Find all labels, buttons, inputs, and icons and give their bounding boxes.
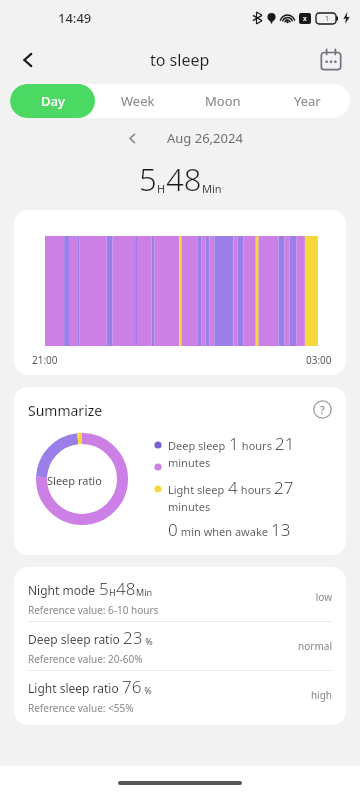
staticText: Light sleep ratio <box>28 680 122 696</box>
staticText: Deep sleep ratio <box>28 631 123 647</box>
button[interactable]: Week <box>95 84 180 118</box>
staticText: minutes <box>168 499 211 514</box>
staticText: Light sleep <box>168 482 228 497</box>
staticText: Day <box>41 92 65 110</box>
staticText: high <box>310 688 332 702</box>
staticText: Reference value: 20-60% <box>28 652 143 666</box>
staticText: 21:00 <box>32 353 58 367</box>
button[interactable]: Previous day <box>117 123 147 153</box>
staticText: 23 <box>123 626 143 649</box>
button[interactable]: Night mode <box>14 573 346 621</box>
staticText: Sleep ratio <box>47 473 102 488</box>
staticText: 03:00 <box>306 353 332 367</box>
button[interactable]: Deep sleep ratio <box>14 622 346 670</box>
staticText: ? <box>320 402 325 417</box>
staticText: Year <box>294 92 321 110</box>
staticText: Reference value: 6-10 hours <box>28 603 159 617</box>
staticText: hours <box>239 438 275 453</box>
staticText: Min <box>136 586 153 598</box>
staticText: Week <box>121 92 155 110</box>
staticText: % <box>143 635 153 647</box>
staticText: Night mode <box>28 582 99 598</box>
staticText: to sleep <box>150 49 210 71</box>
button[interactable]: Calendar <box>312 41 350 79</box>
button[interactable]: Year <box>265 84 350 118</box>
staticText: normal <box>298 639 332 653</box>
staticText: Min <box>202 181 222 196</box>
staticText: 76 <box>122 675 142 698</box>
staticText: 5 <box>139 158 157 200</box>
staticText: 14:49 <box>58 9 92 27</box>
staticText: Aug 26,2024 <box>167 129 243 147</box>
staticText: 0 <box>168 518 178 541</box>
staticText: low <box>315 590 332 604</box>
button[interactable]: Back <box>8 40 48 80</box>
button[interactable]: Light sleep ratio <box>14 671 346 719</box>
staticText: 1 <box>229 432 239 455</box>
staticText: min when awake <box>178 524 271 539</box>
button[interactable]: Day <box>10 84 95 118</box>
staticText: hours <box>238 482 274 497</box>
staticText: 21 <box>275 432 295 455</box>
button[interactable]: Moon <box>180 84 265 118</box>
staticText: Moon <box>205 92 241 110</box>
staticText: 4 <box>228 476 238 499</box>
staticText: minutes <box>168 455 211 470</box>
staticText: H <box>109 586 116 598</box>
staticText: 13 <box>271 518 291 541</box>
staticText: 1 <box>325 14 330 24</box>
staticText: Deep sleep <box>168 438 229 453</box>
staticText: 27 <box>274 476 294 499</box>
staticText: H <box>157 181 166 196</box>
staticText: % <box>142 684 152 696</box>
staticText: Reference value: <55% <box>28 701 134 715</box>
staticText: x <box>303 14 307 24</box>
staticText: 5 <box>99 577 109 600</box>
staticText: Summarize <box>28 401 103 420</box>
staticText: 48 <box>166 158 202 200</box>
staticText: 48 <box>116 577 136 600</box>
button[interactable]: Help <box>306 393 338 425</box>
